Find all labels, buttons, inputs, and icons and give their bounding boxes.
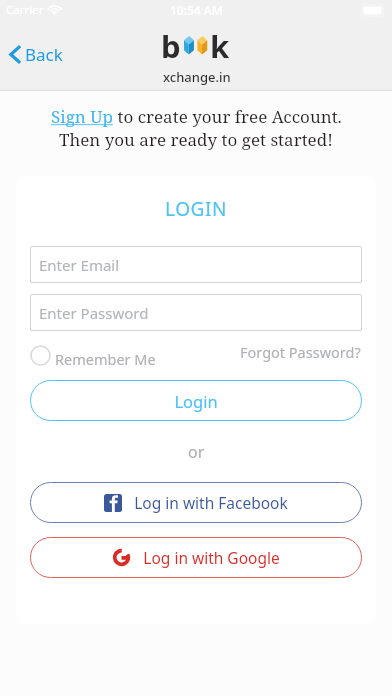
button[interactable]: Enter Email bbox=[30, 246, 362, 283]
button[interactable]: Sign Up bbox=[51, 105, 113, 128]
staticText: Enter Password bbox=[39, 303, 149, 323]
staticText: 10:54 AM bbox=[170, 2, 223, 18]
staticText: Then you are ready to get started! bbox=[59, 128, 333, 151]
staticText: k bbox=[210, 25, 230, 67]
staticText: Back bbox=[25, 43, 63, 66]
staticText: to create your free Account. bbox=[113, 105, 342, 128]
button[interactable]: Log in with Facebook bbox=[30, 482, 362, 523]
staticText: Log in with Google bbox=[143, 547, 280, 568]
button[interactable]: Back bbox=[0, 37, 73, 72]
button[interactable]: Remember Me bbox=[30, 345, 162, 366]
staticText: Log in with Facebook bbox=[134, 492, 288, 513]
staticText: b bbox=[161, 25, 181, 67]
button[interactable]: Enter Password bbox=[30, 294, 362, 331]
staticText: Login bbox=[174, 390, 218, 412]
staticText: or bbox=[188, 441, 205, 463]
button[interactable]: Login bbox=[30, 380, 362, 421]
staticText: xchange.in bbox=[163, 68, 231, 86]
staticText: LOGIN bbox=[165, 196, 228, 222]
staticText: Enter Email bbox=[39, 255, 120, 275]
button[interactable]: Forgot Password? bbox=[238, 340, 363, 364]
staticText: Carrier bbox=[6, 2, 44, 18]
staticText: Remember Me bbox=[55, 349, 156, 369]
button[interactable]: Log in with Google bbox=[30, 537, 362, 578]
